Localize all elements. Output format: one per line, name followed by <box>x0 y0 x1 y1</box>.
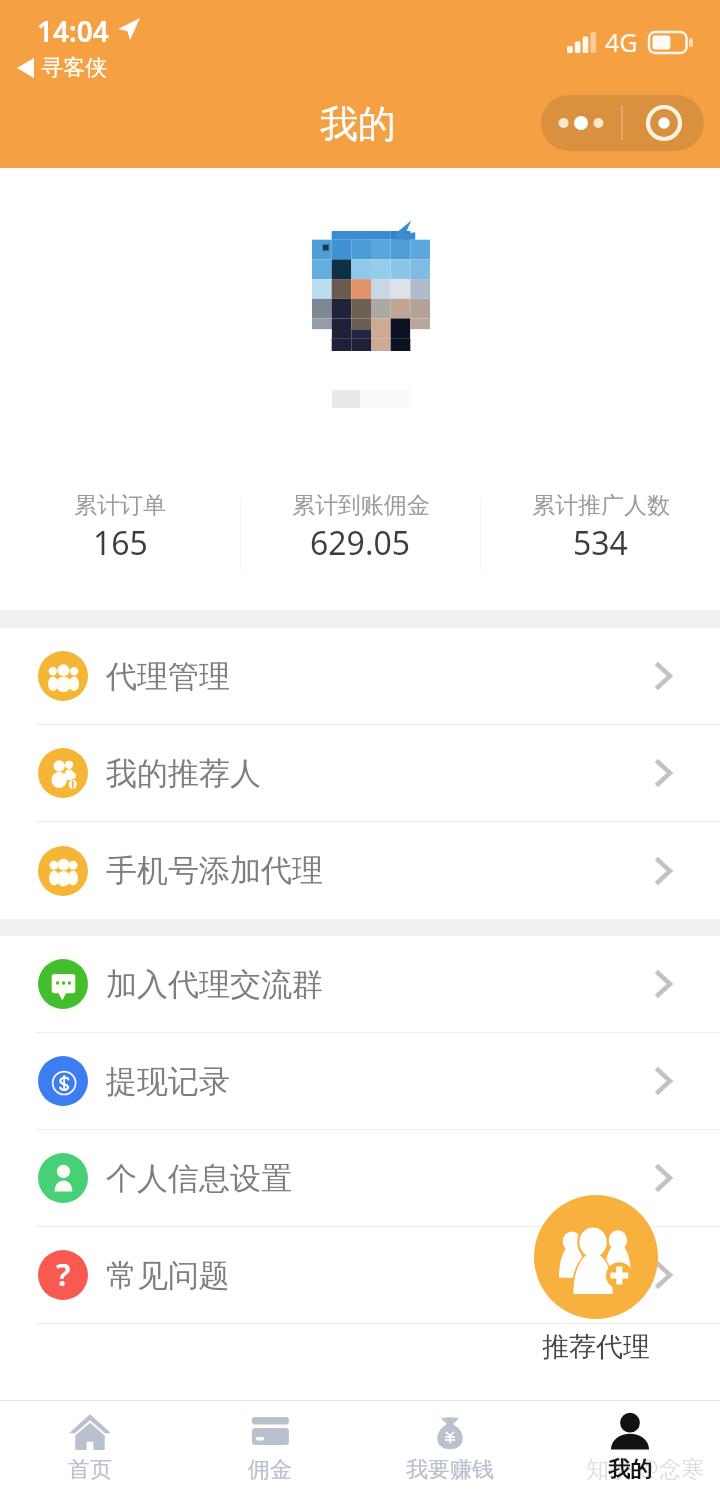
staticText: 首页 <box>68 1456 112 1484</box>
staticText: 寻客侠 <box>41 54 107 82</box>
button[interactable]: ? <box>0 1227 720 1323</box>
button[interactable]: 我的 <box>540 1401 720 1495</box>
button[interactable]: 个人信息设置 <box>0 1130 720 1226</box>
staticText: 常见问题 <box>106 1256 230 1295</box>
staticText: 个人信息设置 <box>106 1159 292 1198</box>
staticText: 累计推广人数 <box>532 491 670 520</box>
staticText: ? <box>56 1253 71 1295</box>
button[interactable]: 我的推荐人 <box>0 725 720 821</box>
staticText: 534 <box>573 521 628 565</box>
staticText: 佣金 <box>248 1456 292 1484</box>
staticText: 我的 <box>608 1456 652 1484</box>
staticText: 提现记录 <box>106 1062 230 1101</box>
staticText: 我的推荐人 <box>106 754 261 793</box>
button[interactable]: 提现记录 <box>0 1033 720 1129</box>
staticText: 我的 <box>320 100 396 148</box>
button[interactable]: 寻客侠 <box>13 50 111 86</box>
button[interactable]: 推荐代理 <box>534 1195 658 1319</box>
button[interactable]: More options and close <box>541 95 704 151</box>
staticText: 累计到账佣金 <box>292 491 430 520</box>
staticText: 14:04 <box>37 12 109 50</box>
staticText: 4G <box>605 25 638 59</box>
button[interactable]: 首页 <box>0 1401 180 1495</box>
staticText: 165 <box>93 521 148 565</box>
button[interactable]: 加入代理交流群 <box>0 936 720 1032</box>
staticText: 我要赚钱 <box>406 1456 494 1484</box>
staticText: 629.05 <box>310 521 411 565</box>
staticText: 累计订单 <box>74 491 166 520</box>
button[interactable]: Avatar <box>312 220 430 351</box>
button[interactable]: 累计到账佣金 <box>241 484 480 584</box>
staticText: 推荐代理 <box>542 1330 650 1364</box>
button[interactable]: 我要赚钱 <box>360 1401 540 1495</box>
button[interactable]: 佣金 <box>180 1401 360 1495</box>
staticText: 代理管理 <box>106 657 230 696</box>
staticText: 手机号添加代理 <box>106 851 323 890</box>
button[interactable]: 累计订单 <box>0 484 240 584</box>
staticText: 知乎 @念寒 <box>586 1452 705 1483</box>
button[interactable]: 代理管理 <box>0 628 720 724</box>
button[interactable]: 累计推广人数 <box>481 484 720 584</box>
button[interactable]: 手机号添加代理 <box>0 822 720 919</box>
staticText: 加入代理交流群 <box>106 965 323 1004</box>
